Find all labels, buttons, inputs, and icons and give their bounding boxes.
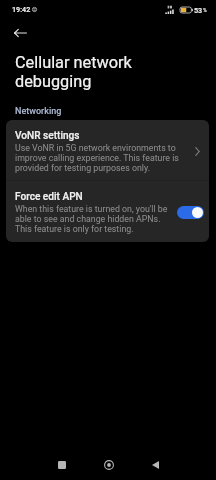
staticText: % [203,7,207,13]
button[interactable]: VoNR settings [6,120,209,180]
button[interactable]: Force edit APN [177,206,204,219]
staticText: 19:42 [12,5,31,13]
staticText: 53 [194,6,203,14]
staticText: VoNR settings [15,130,80,142]
staticText: When this feature is turned on, you'll b… [15,204,177,234]
button[interactable]: Navigate up [8,21,32,45]
button[interactable]: Back [132,450,179,480]
staticText: Networking [15,106,62,117]
staticText: Cellular network debugging [15,53,158,91]
button[interactable]: Home [85,450,132,480]
button[interactable]: Force edit APN [6,181,209,241]
button[interactable]: Recent apps [38,450,85,480]
staticText: Use VoNR in 5G network environments to i… [15,143,190,173]
staticText: Force edit APN [15,191,83,203]
